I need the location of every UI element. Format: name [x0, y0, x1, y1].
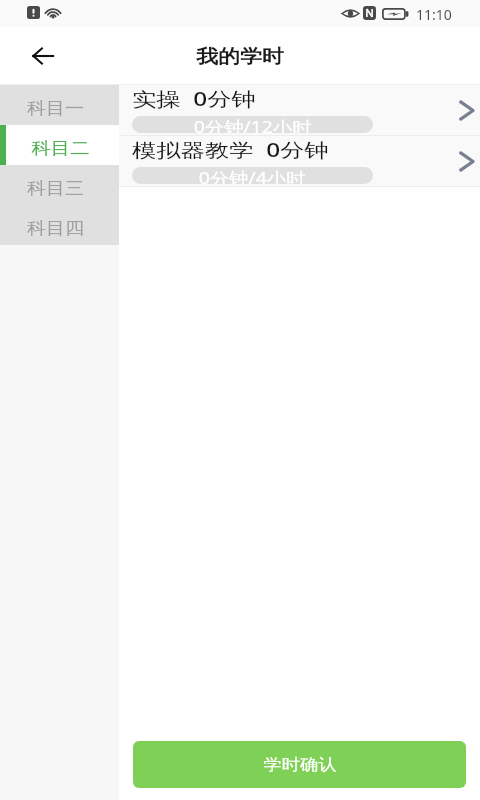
button[interactable]: 科目四: [0, 205, 119, 245]
staticText: 学时确认: [263, 755, 336, 775]
button[interactable]: 科目二: [0, 125, 119, 165]
staticText: 科目三: [27, 178, 84, 199]
button[interactable]: 模拟器教学 0分钟: [119, 136, 480, 187]
button[interactable]: Back: [22, 35, 64, 77]
staticText: 我的学时: [196, 45, 284, 69]
button[interactable]: 实操 0分钟: [119, 85, 480, 136]
staticText: 科目一: [27, 98, 84, 119]
button[interactable]: 科目三: [0, 165, 119, 205]
staticText: 模拟器教学 0分钟: [132, 137, 329, 163]
staticText: 0分钟/4小时: [199, 167, 306, 184]
staticText: 实操 0分钟: [132, 86, 256, 112]
staticText: 科目二: [31, 138, 89, 159]
staticText: 0分钟/12小时: [194, 116, 312, 133]
staticText: 科目四: [27, 218, 84, 239]
staticText: 11:10: [416, 5, 452, 24]
button[interactable]: 科目一: [0, 85, 119, 125]
button[interactable]: 学时确认: [133, 741, 466, 788]
